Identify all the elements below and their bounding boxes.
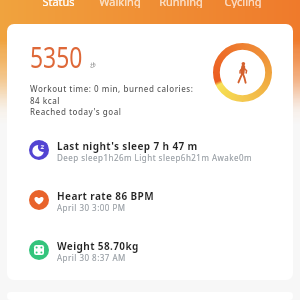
staticText: April 30 3:00 PM bbox=[57, 202, 126, 213]
button[interactable]: Cycling bbox=[212, 0, 274, 8]
staticText: Status bbox=[42, 0, 75, 8]
button[interactable]: 5350 bbox=[7, 24, 293, 280]
other: Step goal progress bbox=[213, 43, 272, 102]
staticText: Walking bbox=[99, 0, 141, 8]
staticText: Cycling bbox=[224, 0, 262, 8]
button[interactable]: Running bbox=[150, 0, 212, 8]
staticText: Weight 58.70kg bbox=[57, 239, 139, 253]
button[interactable]: Walking bbox=[89, 0, 150, 8]
staticText: 5350 bbox=[30, 37, 83, 76]
staticText: Workout time: 0 min, burned calories: bbox=[30, 83, 194, 94]
button[interactable]: Status bbox=[28, 0, 89, 8]
staticText: April 30 8:37 AM bbox=[57, 252, 126, 263]
staticText: 步 bbox=[90, 61, 96, 69]
staticText: 84 kcal bbox=[30, 95, 61, 106]
staticText: Heart rate 86 BPM bbox=[57, 189, 154, 203]
staticText: Last night's sleep 7 h 47 m bbox=[57, 139, 198, 153]
button[interactable]: Last night's sleep 7 h 47 m bbox=[7, 125, 293, 175]
button[interactable]: Heart rate 86 BPM bbox=[7, 175, 293, 225]
button[interactable]: Weight 58.70kg bbox=[7, 225, 293, 275]
staticText: Deep sleep1h26m Light sleep6h21m Awake0m bbox=[57, 152, 253, 163]
staticText: Running bbox=[159, 0, 203, 8]
staticText: Reached today's goal bbox=[30, 106, 122, 117]
